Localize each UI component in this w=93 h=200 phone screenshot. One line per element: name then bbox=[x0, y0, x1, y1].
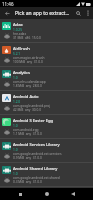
button[interactable]: Android Shared Library bbox=[0, 163, 93, 187]
button[interactable]: Android Services Library bbox=[0, 139, 93, 163]
button[interactable]: Home bbox=[40, 188, 54, 200]
staticText: Analytics bbox=[13, 70, 31, 76]
staticText: 1.2.0 bbox=[13, 100, 21, 104]
staticText: 100 MiB any 31.0.0 bbox=[13, 60, 43, 64]
staticText: hre.adax bbox=[13, 32, 27, 36]
staticText: Pick an app to extract... bbox=[15, 10, 73, 17]
button[interactable]: Back bbox=[66, 188, 80, 200]
button[interactable]: Recents bbox=[13, 188, 27, 200]
staticText: Adax bbox=[13, 22, 23, 28]
staticText: AirBrush bbox=[13, 46, 30, 52]
staticText: 31 MiB x86 15.0.0 bbox=[13, 36, 41, 40]
staticText: 1.1 MiB any 31.0.0 bbox=[13, 132, 42, 136]
staticText: 1.0.25 bbox=[13, 28, 23, 32]
staticText: 1.8 MiB any 28.0.0 bbox=[13, 84, 42, 88]
button[interactable]: Analytics bbox=[0, 67, 93, 91]
button[interactable]: More options bbox=[83, 7, 93, 19]
button[interactable]: Search bbox=[73, 7, 83, 19]
staticText: 5.2.1 bbox=[13, 52, 21, 56]
staticText: com.google.android.ext.services bbox=[13, 152, 62, 156]
staticText: 0.9 MiB any 31.0.0 bbox=[13, 156, 42, 160]
staticText: com.magicv.airbrush bbox=[13, 56, 45, 60]
staticText: 42 MiB any 30.0.0 bbox=[13, 108, 41, 112]
staticText: com.google.android.ext.shared bbox=[13, 176, 60, 180]
staticText: com.google.android.proj bbox=[13, 104, 51, 108]
staticText: 11:46 bbox=[2, 1, 14, 7]
button[interactable]: AirBrush bbox=[0, 43, 93, 67]
staticText: Android Auto bbox=[13, 94, 39, 100]
staticText: Android S Easter Egg bbox=[13, 118, 54, 124]
staticText: Android Services Library bbox=[13, 142, 60, 148]
staticText: 1.0 bbox=[13, 172, 18, 176]
staticText: 1.0 bbox=[13, 124, 18, 128]
button[interactable]: Back bbox=[0, 7, 15, 19]
button[interactable]: Android Auto bbox=[0, 91, 93, 115]
staticText: 1.0 bbox=[13, 76, 18, 80]
button[interactable]: Adax bbox=[0, 19, 93, 43]
staticText: 0.3 MiB any 31.0.0 bbox=[13, 180, 42, 184]
staticText: Android Shared Library bbox=[13, 166, 58, 172]
staticText: com.android.egg bbox=[13, 128, 39, 132]
button[interactable]: Android S Easter Egg bbox=[0, 115, 93, 139]
staticText: com.nhs.calendar.app bbox=[13, 80, 46, 84]
staticText: 1.0 bbox=[13, 148, 18, 152]
